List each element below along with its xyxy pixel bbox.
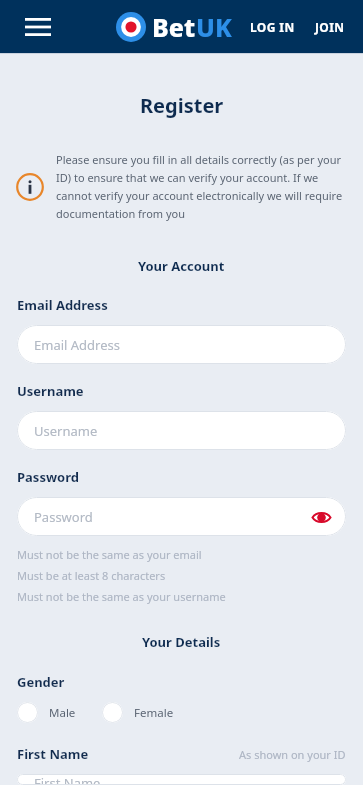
button[interactable]: Female: [102, 702, 178, 723]
staticText: Must not be the same as your username: [17, 589, 226, 604]
staticText: Please ensure you fill in all details co…: [56, 152, 347, 221]
button[interactable]: Bet: [116, 10, 232, 44]
button[interactable]: JOIN: [311, 13, 349, 41]
staticText: Username: [17, 382, 84, 400]
staticText: JOIN: [315, 19, 345, 35]
staticText: LOG IN: [250, 19, 295, 35]
staticText: Email Address: [17, 296, 108, 314]
staticText: Email Address: [34, 336, 120, 354]
staticText: Female: [134, 705, 174, 721]
staticText: Password: [17, 468, 79, 486]
button[interactable]: Username: [17, 411, 346, 450]
button[interactable]: Email Address: [17, 325, 346, 364]
button[interactable]: First Name: [17, 774, 346, 785]
staticText: Your Account: [138, 257, 225, 275]
staticText: Register: [140, 92, 224, 119]
staticText: Gender: [17, 673, 65, 691]
staticText: As shown on your ID: [239, 747, 346, 762]
staticText: First Name: [34, 774, 101, 785]
button[interactable]: Password: [17, 497, 346, 536]
staticText: Male: [49, 705, 76, 721]
button[interactable]: Show password: [310, 506, 332, 528]
staticText: Username: [34, 422, 98, 440]
staticText: Must not be the same as your email: [17, 547, 202, 562]
staticText: First Name: [17, 745, 89, 763]
staticText: Password: [34, 508, 93, 526]
button[interactable]: Male: [17, 702, 80, 723]
staticText: Your Details: [142, 633, 221, 651]
button[interactable]: Menu: [18, 7, 58, 47]
staticText: Bet: [152, 10, 196, 44]
staticText: UK: [196, 10, 232, 44]
staticText: Must be at least 8 characters: [17, 568, 166, 583]
button[interactable]: LOG IN: [246, 13, 299, 41]
